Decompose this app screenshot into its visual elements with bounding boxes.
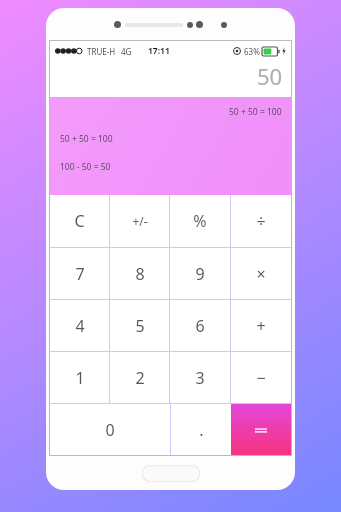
button[interactable]: 7 — [50, 248, 109, 299]
staticText: % — [193, 210, 207, 232]
staticText: 6 — [195, 315, 205, 337]
button[interactable]: ÷ — [231, 195, 291, 247]
button[interactable]: × — [231, 248, 291, 299]
staticText: TRUE-H — [87, 46, 116, 57]
button[interactable]: 5 — [110, 300, 169, 351]
staticText: 50 + 50 = 100 — [60, 133, 113, 145]
staticText: 100 - 50 = 50 — [60, 161, 111, 173]
staticText: 2 — [135, 367, 145, 389]
staticText: 8 — [135, 263, 145, 285]
staticText: C — [74, 210, 85, 232]
button[interactable]: 3 — [170, 352, 230, 403]
staticText: 50 — [257, 61, 283, 91]
staticText: 17:11 — [148, 45, 170, 57]
button[interactable]: Equals — [231, 404, 291, 455]
button[interactable]: . — [171, 404, 231, 455]
button[interactable]: − — [231, 352, 291, 403]
staticText: 4 — [75, 315, 85, 337]
staticText: 50 + 50 = 100 — [229, 106, 282, 118]
button[interactable]: 6 — [170, 300, 230, 351]
staticText: 9 — [195, 263, 205, 285]
button[interactable]: % — [170, 195, 230, 247]
button[interactable]: 1 — [50, 352, 109, 403]
staticText: +/- — [132, 213, 148, 229]
button[interactable]: +/- — [110, 195, 169, 247]
staticText: ÷ — [256, 210, 266, 232]
staticText: 63% — [244, 46, 260, 57]
button[interactable]: Home — [142, 465, 200, 482]
staticText: × — [256, 263, 266, 285]
staticText: 5 — [135, 315, 145, 337]
button[interactable]: 4 — [50, 300, 109, 351]
staticText: . — [199, 419, 204, 441]
staticText: 4G — [121, 46, 132, 57]
button[interactable]: 9 — [170, 248, 230, 299]
staticText: 3 — [195, 367, 205, 389]
button[interactable]: 8 — [110, 248, 169, 299]
staticText: 1 — [75, 367, 85, 389]
button[interactable]: 0 — [50, 404, 170, 455]
button[interactable]: + — [231, 300, 291, 351]
staticText: 0 — [105, 419, 115, 441]
staticText: 7 — [75, 263, 85, 285]
staticText: − — [256, 367, 266, 389]
button[interactable]: 2 — [110, 352, 169, 403]
staticText: + — [256, 315, 266, 337]
button[interactable]: C — [50, 195, 109, 247]
